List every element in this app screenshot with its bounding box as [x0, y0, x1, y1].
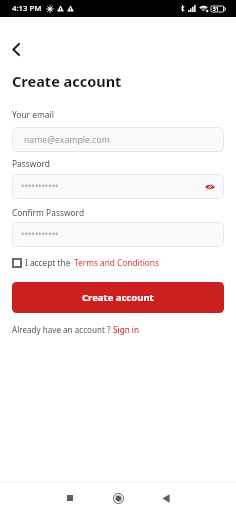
staticText: name@example.com	[24, 134, 110, 146]
button[interactable]: ***********	[12, 222, 224, 247]
staticText: 4:13 PM	[12, 3, 42, 14]
button[interactable]: Create account	[12, 282, 224, 313]
staticText: Password	[12, 158, 50, 169]
staticText: Create account	[82, 291, 154, 304]
staticText: Create account	[12, 71, 122, 91]
button[interactable]: I accept the	[12, 257, 159, 268]
button[interactable]: Back	[4, 37, 28, 61]
staticText: ***********	[21, 230, 59, 238]
button[interactable]: Back	[152, 484, 180, 512]
staticText: 51	[213, 6, 219, 12]
staticText: Confirm Password	[12, 207, 85, 218]
staticText: Already have an account ?	[12, 324, 113, 335]
staticText: I accept the	[25, 257, 71, 268]
staticText: Sign in	[113, 324, 140, 335]
staticText: Your email	[12, 109, 54, 120]
button[interactable]: ***********	[12, 174, 224, 199]
button[interactable]: Recent apps	[56, 484, 84, 512]
button[interactable]: name@example.com	[12, 127, 224, 152]
button[interactable]: Home	[104, 484, 132, 512]
button[interactable]: Toggle password visibility	[203, 180, 217, 194]
staticText: Terms and Conditions	[74, 257, 159, 268]
button[interactable]: Sign in	[113, 324, 140, 335]
staticText: ***********	[21, 182, 59, 190]
